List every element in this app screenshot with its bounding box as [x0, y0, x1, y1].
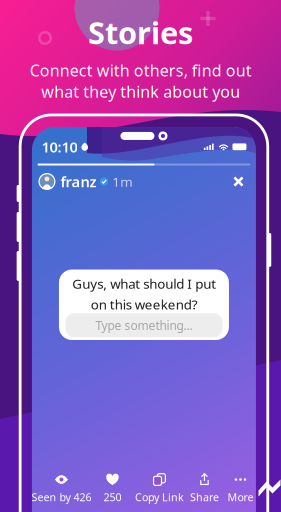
button[interactable]: More — [223, 472, 257, 505]
button[interactable]: Copy Link — [133, 472, 185, 505]
button[interactable]: Seen by 426 — [31, 472, 91, 505]
staticText: More — [227, 490, 253, 504]
staticText: 250 — [103, 490, 121, 504]
button[interactable]: Close story — [227, 170, 249, 192]
staticText: 1m — [112, 173, 132, 190]
staticText: Connect with others, find out what they … — [29, 60, 251, 102]
staticText: Seen by 426 — [31, 490, 91, 504]
button[interactable]: 250 — [91, 472, 133, 505]
staticText: Type something... — [95, 317, 192, 333]
staticText: 10:10 — [41, 137, 77, 156]
staticText: Copy Link — [135, 490, 184, 504]
button[interactable]: Share — [185, 472, 223, 505]
button[interactable]: Type something... — [65, 313, 222, 337]
staticText: franz — [60, 172, 96, 191]
staticText: Share — [190, 490, 219, 504]
staticText: Stories — [88, 12, 193, 53]
staticText: Guys, what should I put on this weekend? — [72, 275, 216, 313]
